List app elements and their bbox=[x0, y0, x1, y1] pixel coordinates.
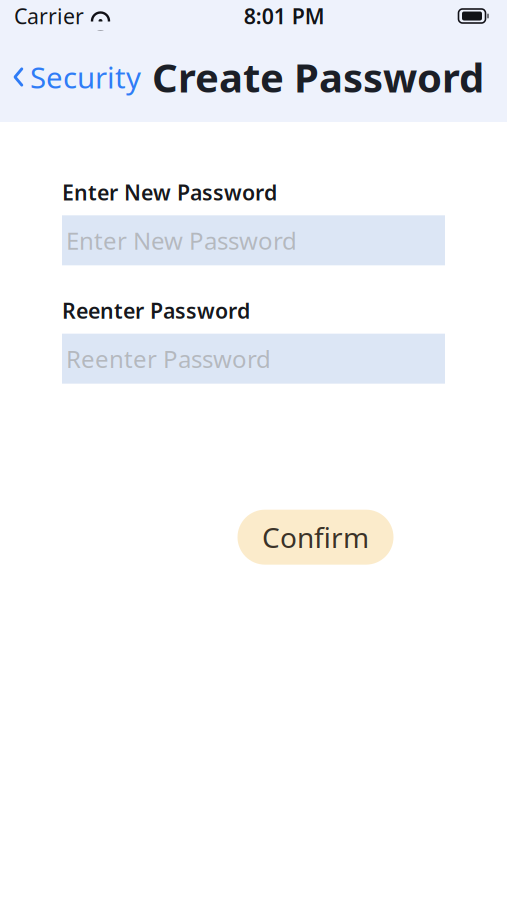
staticText: Enter New Password bbox=[66, 224, 297, 256]
staticText: Carrier bbox=[14, 2, 84, 30]
staticText: Enter New Password bbox=[62, 178, 277, 206]
staticText: Reenter Password bbox=[62, 296, 250, 325]
button[interactable]: Enter New Password bbox=[62, 215, 445, 265]
staticText: Confirm bbox=[262, 519, 369, 556]
button[interactable]: Security bbox=[0, 47, 141, 106]
button[interactable]: Confirm bbox=[237, 510, 393, 565]
button[interactable]: Reenter Password bbox=[62, 334, 445, 384]
staticText: 8:01 PM bbox=[244, 2, 325, 30]
staticText: Reenter Password bbox=[66, 343, 271, 375]
staticText: Create Password bbox=[152, 50, 484, 103]
staticText: Security bbox=[30, 57, 141, 96]
